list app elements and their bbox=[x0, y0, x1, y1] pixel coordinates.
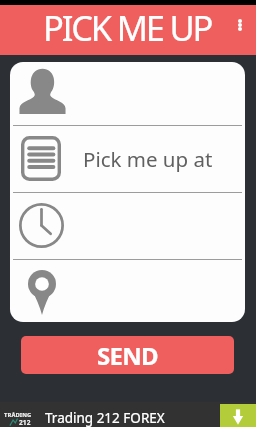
button[interactable]: Contact bbox=[10, 62, 245, 125]
button[interactable]: TRÅDING bbox=[0, 402, 256, 427]
staticText: Pick me up at bbox=[83, 145, 213, 173]
staticText: PICK ME UP bbox=[43, 4, 212, 51]
staticText: SEND bbox=[97, 339, 158, 372]
staticText: 212 bbox=[19, 418, 31, 427]
staticText: Trading 212 FOREX bbox=[45, 409, 165, 427]
button[interactable]: Pick me up at bbox=[10, 125, 245, 192]
button[interactable]: More options bbox=[228, 5, 256, 55]
button[interactable]: Location bbox=[10, 259, 245, 322]
button[interactable]: SEND bbox=[21, 336, 234, 374]
button[interactable]: Time bbox=[10, 192, 245, 259]
button[interactable]: Install bbox=[220, 404, 256, 427]
staticText: TRÅDING bbox=[4, 411, 32, 419]
